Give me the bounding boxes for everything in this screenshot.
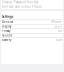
staticText: 84% bbox=[56, 38, 62, 42]
staticText: Change Password Font Size bbox=[2, 0, 39, 4]
staticText: Privacy bbox=[2, 29, 10, 33]
staticText: General bbox=[2, 20, 13, 24]
button[interactable]: General bbox=[1, 20, 63, 24]
button[interactable]: Sounds bbox=[1, 33, 63, 37]
staticText: Font Size and Colour Picture bbox=[2, 5, 42, 8]
staticText: Display bbox=[2, 25, 11, 28]
staticText: iPhone bbox=[51, 20, 62, 24]
button[interactable]: Privacy bbox=[1, 29, 63, 33]
staticText: Settings bbox=[2, 15, 13, 18]
staticText: Battery bbox=[2, 38, 11, 42]
staticText: On bbox=[58, 29, 62, 33]
button[interactable]: Display bbox=[1, 24, 63, 28]
button[interactable]: Battery bbox=[1, 38, 63, 42]
staticText: Sounds bbox=[2, 34, 12, 37]
staticText: Auto bbox=[55, 25, 62, 28]
